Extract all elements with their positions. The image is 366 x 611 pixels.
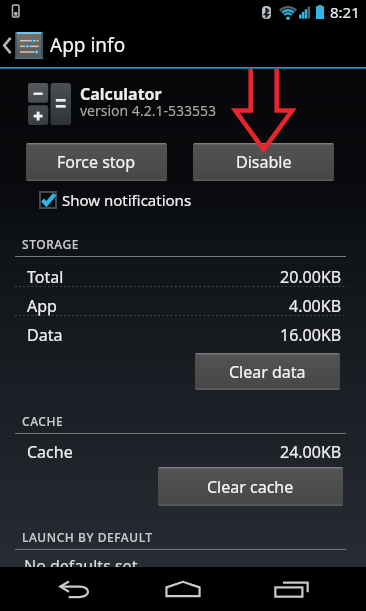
staticText: Clear cache [207,476,294,498]
staticText: STORAGE [22,236,79,252]
staticText: Total [27,266,64,288]
staticText: version 4.2.1-533553 [80,101,216,120]
staticText: Clear data [229,361,306,383]
staticText: 8:21 [330,2,360,22]
staticText: Force stop [57,151,136,173]
staticText: 4.00KB [289,295,342,317]
staticText: 16.00KB [280,324,342,346]
staticText: Calculator [80,83,162,105]
staticText: Data [27,324,63,346]
button[interactable]: Back [21,567,129,611]
button[interactable]: Show notifications [40,190,192,210]
button[interactable]: Clear data [195,353,340,390]
button[interactable]: Home [129,567,237,611]
staticText: LAUNCH BY DEFAULT [22,529,153,545]
staticText: App info [50,32,126,58]
staticText: Show notifications [62,190,192,210]
staticText: No defaults set [24,555,138,577]
button[interactable]: Force stop [26,143,167,181]
other: Back [3,36,11,55]
button[interactable]: Recent apps [237,567,345,611]
staticText: 20.00KB [280,266,342,288]
staticText: CACHE [22,413,64,429]
button[interactable]: Disable [193,143,334,181]
button[interactable]: Clear cache [158,467,343,506]
staticText: Disable [236,151,292,173]
button[interactable]: Back [0,23,366,67]
staticText: 24.00KB [280,441,342,463]
staticText: App [27,295,57,317]
staticText: Cache [27,441,73,463]
